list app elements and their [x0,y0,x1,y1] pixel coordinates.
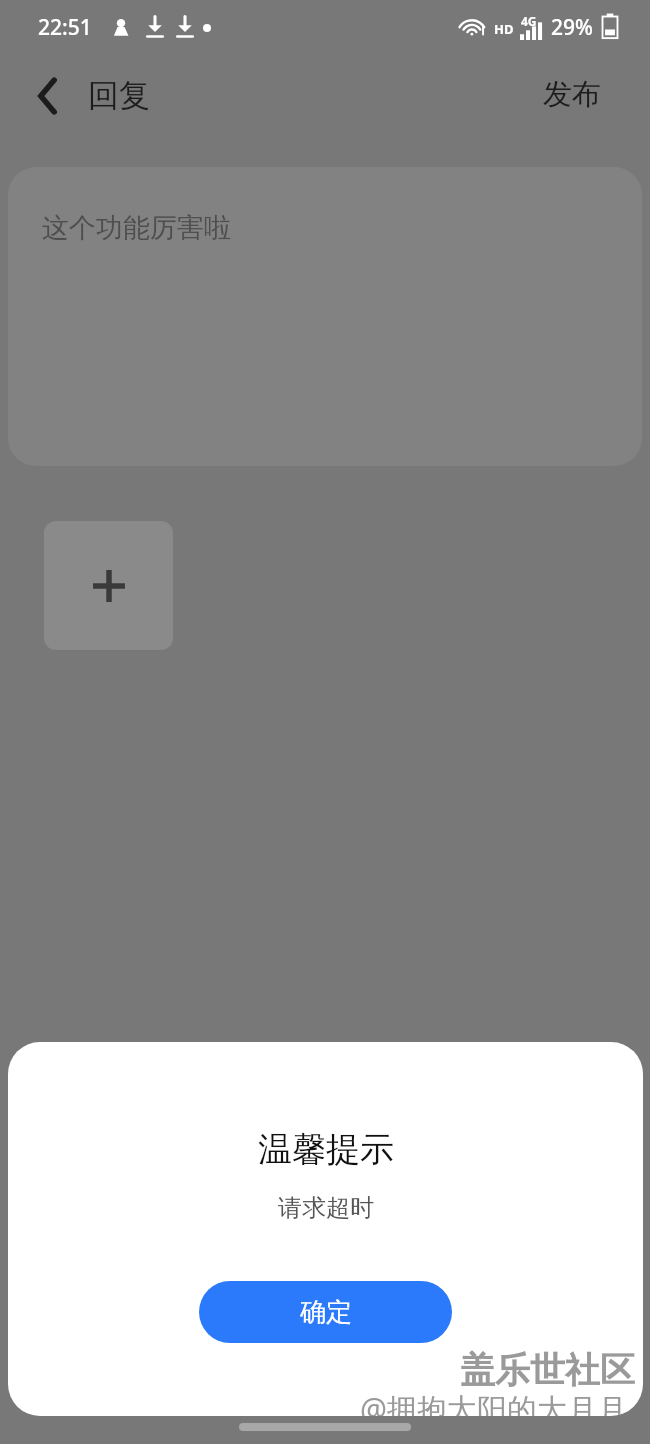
staticText: 请求超时 [278,1193,374,1223]
staticText: 确定 [300,1296,352,1329]
staticText: 22:51 [38,13,92,42]
button[interactable]: 发布 [531,66,613,123]
staticText: 回复 [88,76,150,115]
staticText: 发布 [543,76,601,113]
button[interactable]: 确定 [199,1281,452,1343]
staticText: HD [494,20,514,38]
staticText: 温馨提示 [258,1128,394,1171]
staticText: 4G [521,13,537,29]
button[interactable]: Add photo [44,521,173,650]
staticText: 盖乐世社区 [460,1348,635,1392]
staticText: 这个功能厉害啦 [42,211,231,245]
button[interactable]: Back [16,64,80,128]
staticText: 29% [551,13,593,42]
staticText: @拥抱太阳的大月月 [360,1388,627,1416]
button[interactable]: 这个功能厉害啦 [8,167,642,466]
